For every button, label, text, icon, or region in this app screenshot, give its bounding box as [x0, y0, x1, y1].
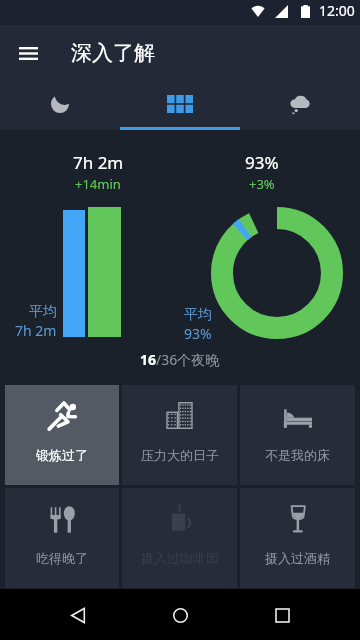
staticText: 平均: [184, 306, 212, 324]
staticText: 吃得晚了: [36, 550, 88, 566]
button[interactable]: Sleep: [0, 81, 120, 130]
button[interactable]: Home: [156, 591, 204, 639]
staticText: 93%: [245, 151, 279, 174]
staticText: 压力大的日子: [141, 447, 219, 463]
staticText: 7h 2m: [15, 321, 57, 340]
button[interactable]: 压力大的日子: [122, 385, 237, 485]
button[interactable]: 锻炼过了: [5, 385, 119, 485]
button[interactable]: Notes: [240, 81, 360, 130]
staticText: 锻炼过了: [36, 447, 88, 463]
staticText: 不是我的床: [265, 447, 330, 463]
button[interactable]: Insights: [120, 81, 240, 130]
staticText: 12:00: [319, 1, 355, 20]
button[interactable]: 摄入过咖啡因: [122, 488, 237, 588]
staticText: 摄入过酒精: [265, 550, 330, 566]
button[interactable]: 不是我的床: [240, 385, 355, 485]
staticText: +14min: [75, 175, 121, 193]
button[interactable]: 吃得晚了: [5, 488, 119, 588]
staticText: 7h 2m: [73, 151, 124, 174]
button[interactable]: Menu: [8, 33, 48, 73]
button[interactable]: Back: [54, 591, 102, 639]
staticText: 深入了解: [71, 40, 155, 66]
staticText: 93%: [184, 324, 212, 343]
button[interactable]: Recents: [258, 591, 306, 639]
staticText: 16/36个夜晚: [140, 350, 220, 369]
staticText: 平均: [29, 303, 57, 321]
button[interactable]: 摄入过酒精: [240, 488, 355, 588]
staticText: +3%: [249, 175, 275, 193]
staticText: 摄入过咖啡因: [141, 550, 219, 566]
